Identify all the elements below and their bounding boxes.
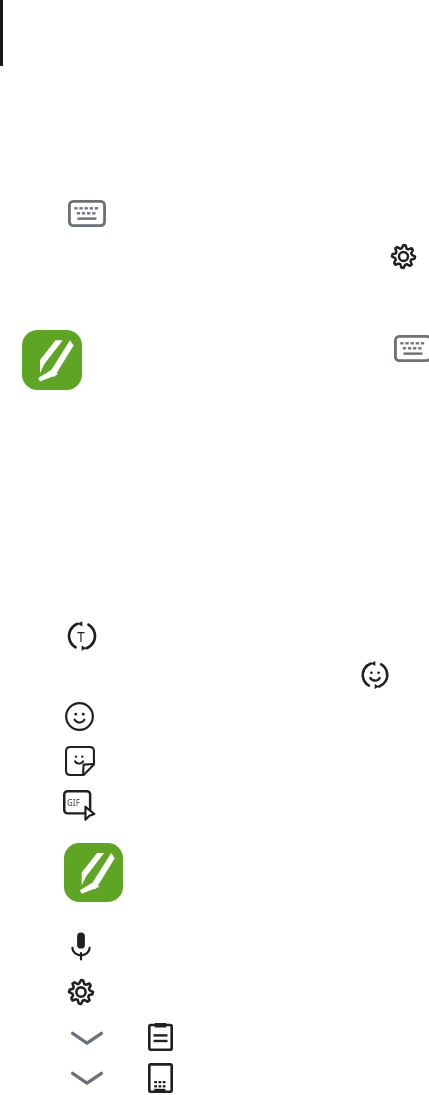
button[interactable]: Emoji [64,701,95,732]
button[interactable]: Stickers [65,746,95,776]
button[interactable]: Convert to emoji [358,658,392,692]
button[interactable]: Collapse [68,1025,106,1051]
button[interactable]: Keyboard [394,335,429,362]
button[interactable]: Keyboard [68,200,106,227]
staticText: T [77,627,85,646]
button[interactable]: GIF [63,790,96,820]
button[interactable]: Samsung Notes [64,843,123,902]
button[interactable]: Settings [389,242,418,271]
staticText: GIF [67,797,80,808]
button[interactable]: Collapse [68,1065,106,1091]
button[interactable]: Voice input [68,930,94,962]
button[interactable]: Settings [66,977,96,1007]
button[interactable]: Samsung Notes [22,330,82,390]
button[interactable]: Number keyboard [148,1063,173,1093]
button[interactable]: Clipboard [148,1023,173,1051]
button[interactable]: Translate [64,618,100,654]
